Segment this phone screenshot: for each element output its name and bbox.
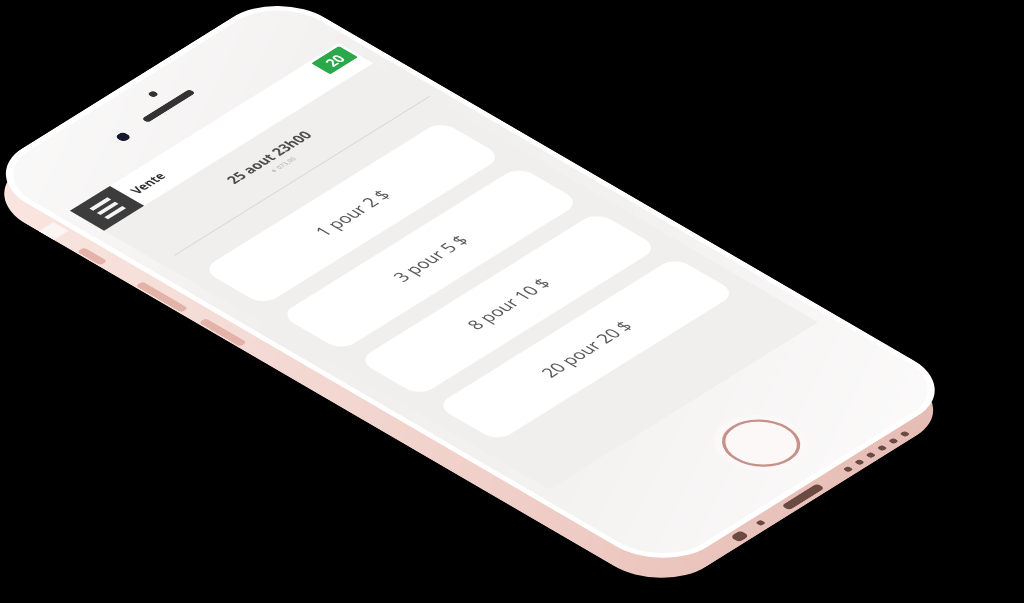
staticText: 3 pour 5 $ xyxy=(387,231,475,286)
staticText: ♦ 073,00 xyxy=(267,155,298,174)
staticText: 20 pour 20 $ xyxy=(535,317,639,381)
button[interactable]: Home xyxy=(694,403,828,483)
staticText: 20 xyxy=(320,51,350,70)
staticText: Vente xyxy=(126,169,170,196)
button[interactable]: 3 pour 5 $ xyxy=(279,166,581,351)
button[interactable]: 1 pour 2 $ xyxy=(201,120,503,306)
staticText: 25 aout 23h00 xyxy=(221,128,317,187)
staticText: 8 pour 10 $ xyxy=(461,274,557,333)
button[interactable]: 8 pour 10 $ xyxy=(357,211,659,397)
button[interactable]: 20 pour 20 $ xyxy=(435,257,737,442)
button[interactable]: 20 xyxy=(311,46,358,75)
staticText: 1 pour 2 $ xyxy=(309,186,397,240)
button[interactable]: Open navigation menu xyxy=(70,186,144,231)
